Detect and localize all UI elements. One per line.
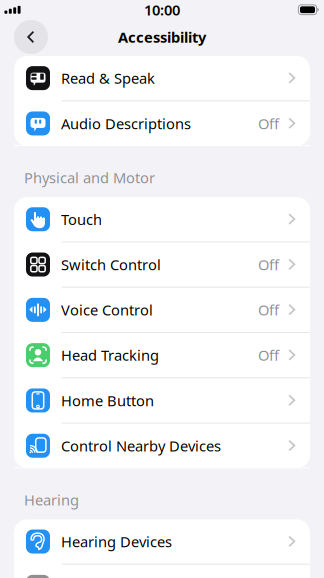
staticText: Off [258,300,279,320]
staticText: Voice Control [61,300,153,320]
button[interactable]: Read & Speak [14,56,310,101]
staticText: Home Button [61,391,154,410]
staticText: Accessibility [118,27,206,47]
button[interactable]: Audio Descriptions [14,101,310,146]
staticText: Control Nearby Devices [61,436,221,455]
staticText: Hearing Devices [61,532,172,551]
staticText: Hearing [24,490,79,510]
button[interactable]: Back [14,20,48,54]
staticText: Head Tracking [61,345,159,365]
staticText: Off [258,255,279,274]
staticText: Touch [61,209,102,229]
button[interactable]: Home Button [14,378,310,424]
button[interactable]: Control Nearby Devices [14,424,310,468]
staticText: 10:00 [144,0,180,19]
staticText: Read & Speak [61,68,155,88]
button[interactable]: Sound Recognition [14,565,310,578]
staticText: Audio Descriptions [61,114,191,133]
button[interactable]: Touch [14,197,310,242]
button[interactable]: Head Tracking [14,333,310,378]
staticText: Off [258,345,279,365]
staticText: Off [258,114,279,133]
button[interactable]: Voice Control [14,288,310,333]
staticText: Switch Control [61,255,161,274]
staticText: Physical and Motor [24,168,155,187]
button[interactable]: Hearing Devices [14,519,310,565]
button[interactable]: Switch Control [14,242,310,288]
